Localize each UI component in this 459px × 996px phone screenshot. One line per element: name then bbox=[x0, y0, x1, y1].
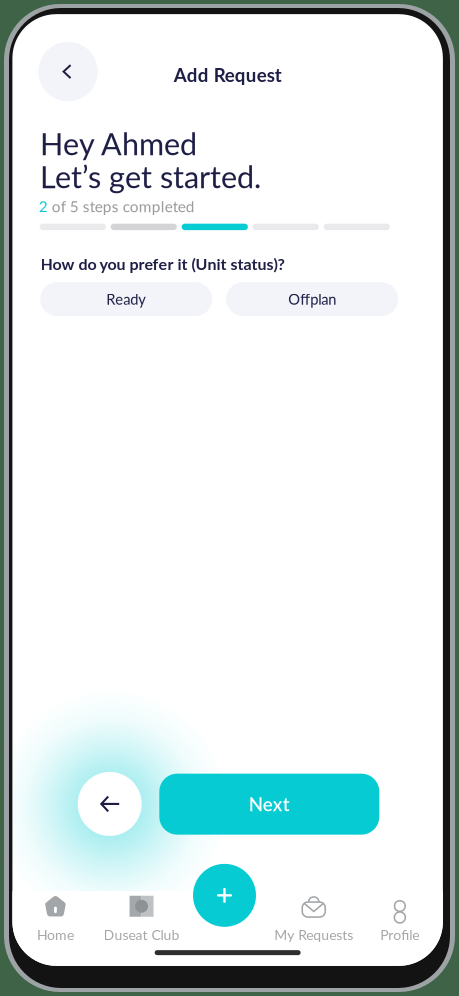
staticText: Let’s get started. bbox=[40, 158, 261, 195]
button[interactable]: Previous step bbox=[78, 772, 142, 836]
button[interactable]: Duseat Club bbox=[98, 891, 185, 947]
staticText: of 5 steps completed bbox=[48, 197, 195, 215]
staticText: Ready bbox=[106, 290, 146, 308]
button[interactable]: Next bbox=[159, 774, 379, 835]
button[interactable]: Add request bbox=[193, 864, 256, 927]
button[interactable]: My Requests bbox=[271, 891, 357, 947]
button[interactable]: Offplan bbox=[226, 282, 398, 316]
staticText: Offplan bbox=[288, 290, 336, 308]
staticText: Hey Ahmed bbox=[40, 125, 197, 162]
staticText: Home bbox=[37, 926, 74, 943]
staticText: Next bbox=[249, 793, 290, 815]
staticText: Profile bbox=[380, 926, 419, 943]
staticText: 2 bbox=[39, 197, 48, 215]
button[interactable]: Home bbox=[12, 891, 98, 947]
button[interactable]: Ready bbox=[40, 282, 212, 316]
button[interactable]: Profile bbox=[357, 891, 443, 947]
staticText: Add Request bbox=[174, 64, 282, 86]
staticText: How do you prefer it (Unit status)? bbox=[41, 254, 285, 273]
button[interactable]: Back bbox=[38, 42, 98, 101]
staticText: Duseat Club bbox=[103, 926, 179, 943]
staticText: My Requests bbox=[274, 926, 353, 943]
